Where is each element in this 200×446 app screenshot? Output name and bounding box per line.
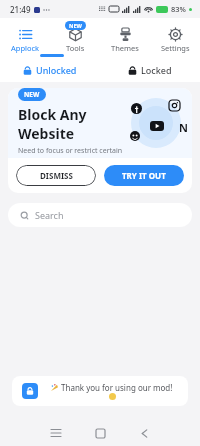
button[interactable]: Home	[78, 420, 122, 446]
button[interactable]: Settings	[150, 18, 200, 58]
staticText: Search	[35, 209, 64, 221]
staticText: TRY IT OUT	[122, 170, 166, 181]
button[interactable]: NEW	[50, 18, 100, 58]
button[interactable]: Search	[8, 203, 192, 227]
button[interactable]: Themes	[100, 18, 150, 58]
staticText: NEW	[24, 90, 40, 99]
staticText: NEW	[69, 22, 82, 29]
button[interactable]: DISMISS	[16, 165, 96, 186]
button[interactable]: Locked	[100, 58, 200, 82]
staticText: 83%	[171, 4, 186, 14]
staticText: Applock	[11, 43, 40, 53]
staticText: Need to focus or restrict certain websit…	[18, 146, 129, 158]
button[interactable]: Applock	[0, 18, 50, 58]
staticText: Locked	[141, 64, 172, 76]
staticText: Block Any Website	[18, 105, 134, 143]
staticText: Tools	[66, 43, 85, 53]
staticText: 21:49	[10, 4, 31, 15]
staticText: Themes	[111, 43, 139, 53]
staticText: N	[179, 120, 188, 135]
staticText: Unlocked	[36, 64, 77, 76]
button[interactable]: Back	[122, 420, 166, 446]
button[interactable]: Unlocked	[0, 58, 100, 82]
staticText: Thank you for using our mod!	[61, 382, 173, 393]
staticText: DISMISS	[40, 170, 73, 181]
button[interactable]: TRY IT OUT	[104, 165, 184, 186]
staticText: Settings	[161, 43, 190, 53]
button[interactable]: Recent apps	[34, 420, 78, 446]
